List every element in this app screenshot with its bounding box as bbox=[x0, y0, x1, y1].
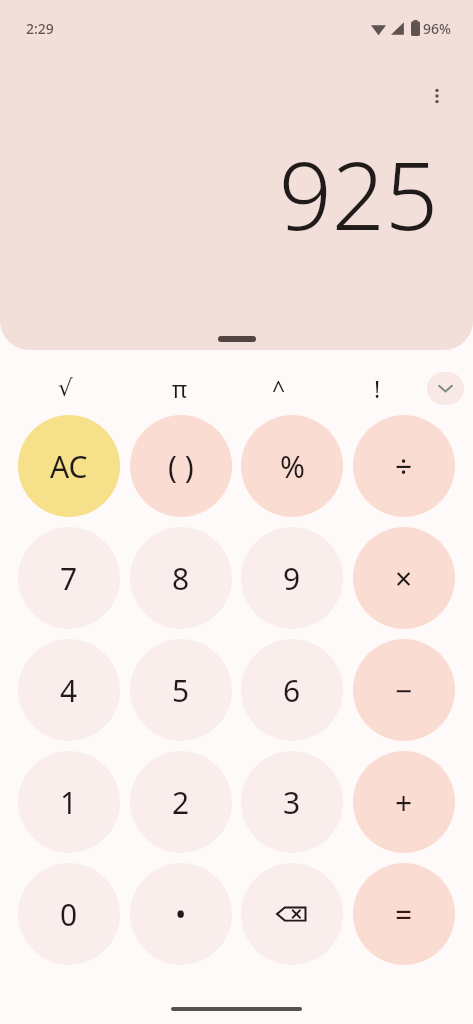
button[interactable]: 0 bbox=[18, 863, 120, 965]
staticText: 9 bbox=[283, 558, 301, 599]
button[interactable]: 6 bbox=[241, 639, 343, 741]
staticText: • bbox=[175, 894, 187, 935]
button[interactable]: π bbox=[130, 372, 229, 405]
button[interactable]: 4 bbox=[18, 639, 120, 741]
button[interactable]: Collapse bbox=[427, 372, 464, 405]
button[interactable]: Backspace bbox=[241, 863, 343, 965]
button[interactable]: 5 bbox=[130, 639, 232, 741]
staticText: ^ bbox=[272, 373, 286, 404]
staticText: % bbox=[280, 446, 305, 487]
button[interactable]: ! bbox=[328, 372, 427, 405]
button[interactable]: × bbox=[353, 527, 455, 629]
staticText: 4 bbox=[60, 670, 78, 711]
button[interactable]: 3 bbox=[241, 751, 343, 853]
staticText: 1 bbox=[60, 782, 78, 823]
staticText: 925 bbox=[278, 131, 438, 258]
button[interactable]: + bbox=[353, 751, 455, 853]
button[interactable]: − bbox=[353, 639, 455, 741]
staticText: 2 bbox=[172, 782, 190, 823]
staticText: = bbox=[395, 894, 413, 935]
staticText: 7 bbox=[60, 558, 78, 599]
staticText: 6 bbox=[283, 670, 301, 711]
button[interactable]: ( ) bbox=[130, 415, 232, 517]
staticText: + bbox=[395, 782, 413, 823]
button[interactable]: ^ bbox=[229, 372, 328, 405]
staticText: × bbox=[395, 558, 413, 599]
staticText: √ bbox=[58, 375, 73, 402]
button[interactable]: 7 bbox=[18, 527, 120, 629]
staticText: 96% bbox=[423, 19, 451, 38]
button[interactable]: AC bbox=[18, 415, 120, 517]
staticText: AC bbox=[50, 446, 88, 487]
staticText: ÷ bbox=[395, 446, 413, 487]
staticText: ( ) bbox=[168, 446, 194, 487]
staticText: ! bbox=[374, 373, 381, 404]
staticText: 8 bbox=[172, 558, 190, 599]
button[interactable]: ÷ bbox=[353, 415, 455, 517]
button[interactable]: 1 bbox=[18, 751, 120, 853]
button[interactable]: 9 bbox=[241, 527, 343, 629]
button[interactable]: 2 bbox=[130, 751, 232, 853]
button[interactable]: More options bbox=[415, 74, 459, 118]
button[interactable]: √ bbox=[0, 372, 130, 405]
button[interactable]: • bbox=[130, 863, 232, 965]
staticText: π bbox=[172, 373, 188, 404]
button[interactable]: = bbox=[353, 863, 455, 965]
staticText: 2:29 bbox=[26, 19, 54, 38]
staticText: 5 bbox=[172, 670, 190, 711]
staticText: − bbox=[395, 670, 413, 711]
staticText: 3 bbox=[283, 782, 301, 823]
button[interactable]: 8 bbox=[130, 527, 232, 629]
staticText: 0 bbox=[60, 894, 78, 935]
button[interactable]: % bbox=[241, 415, 343, 517]
